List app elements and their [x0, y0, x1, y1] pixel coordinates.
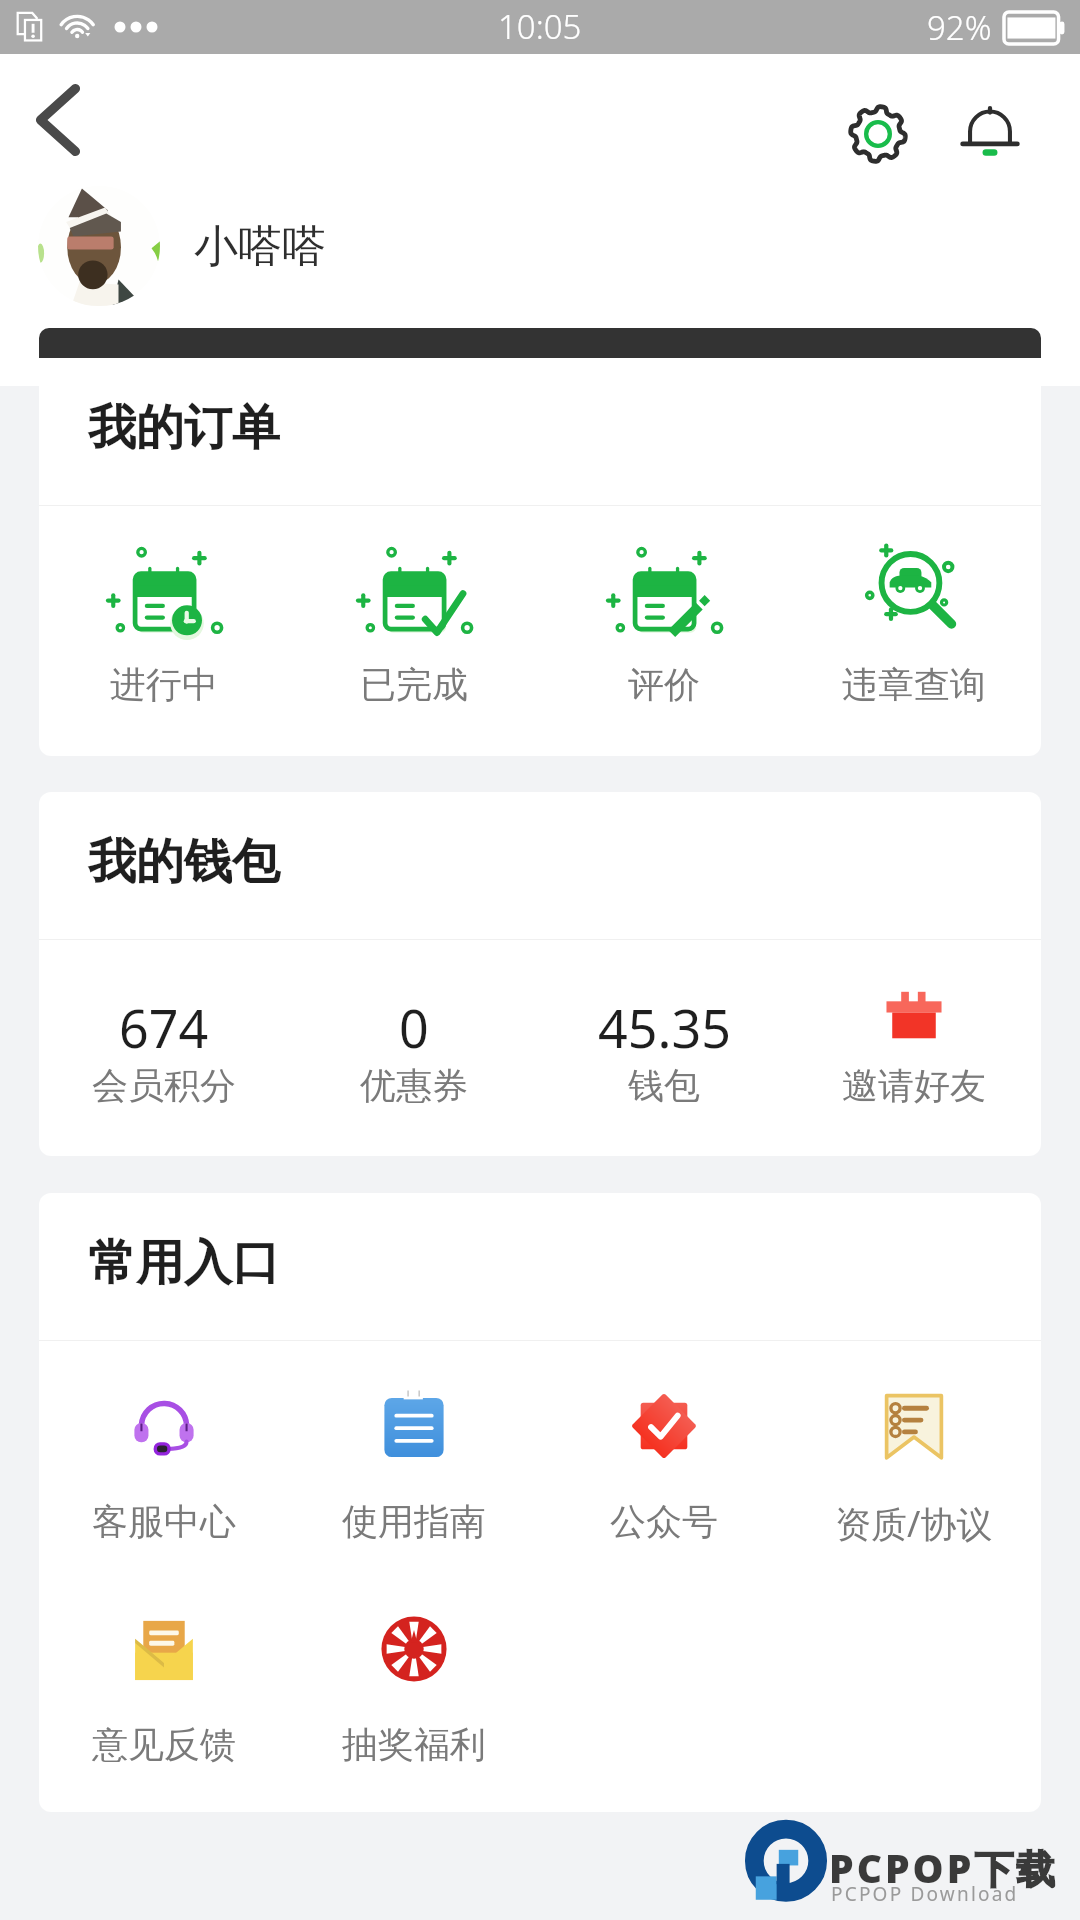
button[interactable]: 674	[39, 972, 289, 1127]
staticText: 资质/协议	[835, 1499, 993, 1548]
button[interactable]: 使用指南	[289, 1368, 539, 1573]
button[interactable]: 抽奖福利	[289, 1591, 539, 1796]
staticText: 使用指南	[342, 1499, 486, 1544]
staticText: 我的钱包	[88, 832, 280, 892]
button[interactable]: 邀请好友	[789, 972, 1039, 1127]
button[interactable]: 进行中	[39, 528, 289, 723]
staticText: 邀请好友	[842, 1063, 986, 1108]
button[interactable]: 违章查询	[789, 528, 1039, 723]
staticText: 抽奖福利	[342, 1722, 486, 1767]
staticText: 92%	[927, 5, 992, 50]
button[interactable]: 0	[289, 972, 539, 1127]
staticText: 意见反馈	[92, 1722, 236, 1767]
staticText: 客服中心	[92, 1499, 236, 1544]
staticText: 已完成	[360, 662, 468, 707]
button[interactable]: 资质/协议	[789, 1368, 1039, 1573]
button[interactable]: Settings	[834, 90, 922, 178]
button[interactable]: 评价	[539, 528, 789, 723]
button[interactable]: 公众号	[539, 1368, 789, 1573]
staticText: 674	[119, 992, 209, 1063]
button[interactable]: 45.35	[539, 972, 789, 1127]
button[interactable]: 已完成	[289, 528, 539, 723]
staticText: PCPOP下载	[829, 1841, 1059, 1894]
staticText: 违章查询	[842, 662, 986, 707]
staticText: 进行中	[110, 662, 218, 707]
button[interactable]: 意见反馈	[39, 1591, 289, 1796]
button[interactable]: Notifications	[946, 90, 1034, 178]
staticText: 45.35	[598, 992, 731, 1063]
staticText: 小嗒嗒	[194, 219, 326, 274]
staticText: 0	[399, 992, 429, 1063]
staticText: 会员积分	[92, 1063, 236, 1108]
staticText: 公众号	[610, 1499, 718, 1544]
staticText: 优惠券	[360, 1063, 468, 1108]
staticText: 钱包	[628, 1063, 700, 1108]
staticText: 常用入口	[88, 1233, 280, 1293]
staticText: 我的订单	[88, 398, 280, 458]
button[interactable]: 客服中心	[39, 1368, 289, 1573]
staticText: 评价	[628, 662, 700, 707]
staticText: 10:05	[498, 4, 582, 49]
button[interactable]: 小嗒嗒	[0, 186, 1080, 306]
staticText: PCPOP Download	[831, 1881, 1019, 1907]
button[interactable]: Back	[12, 72, 104, 168]
